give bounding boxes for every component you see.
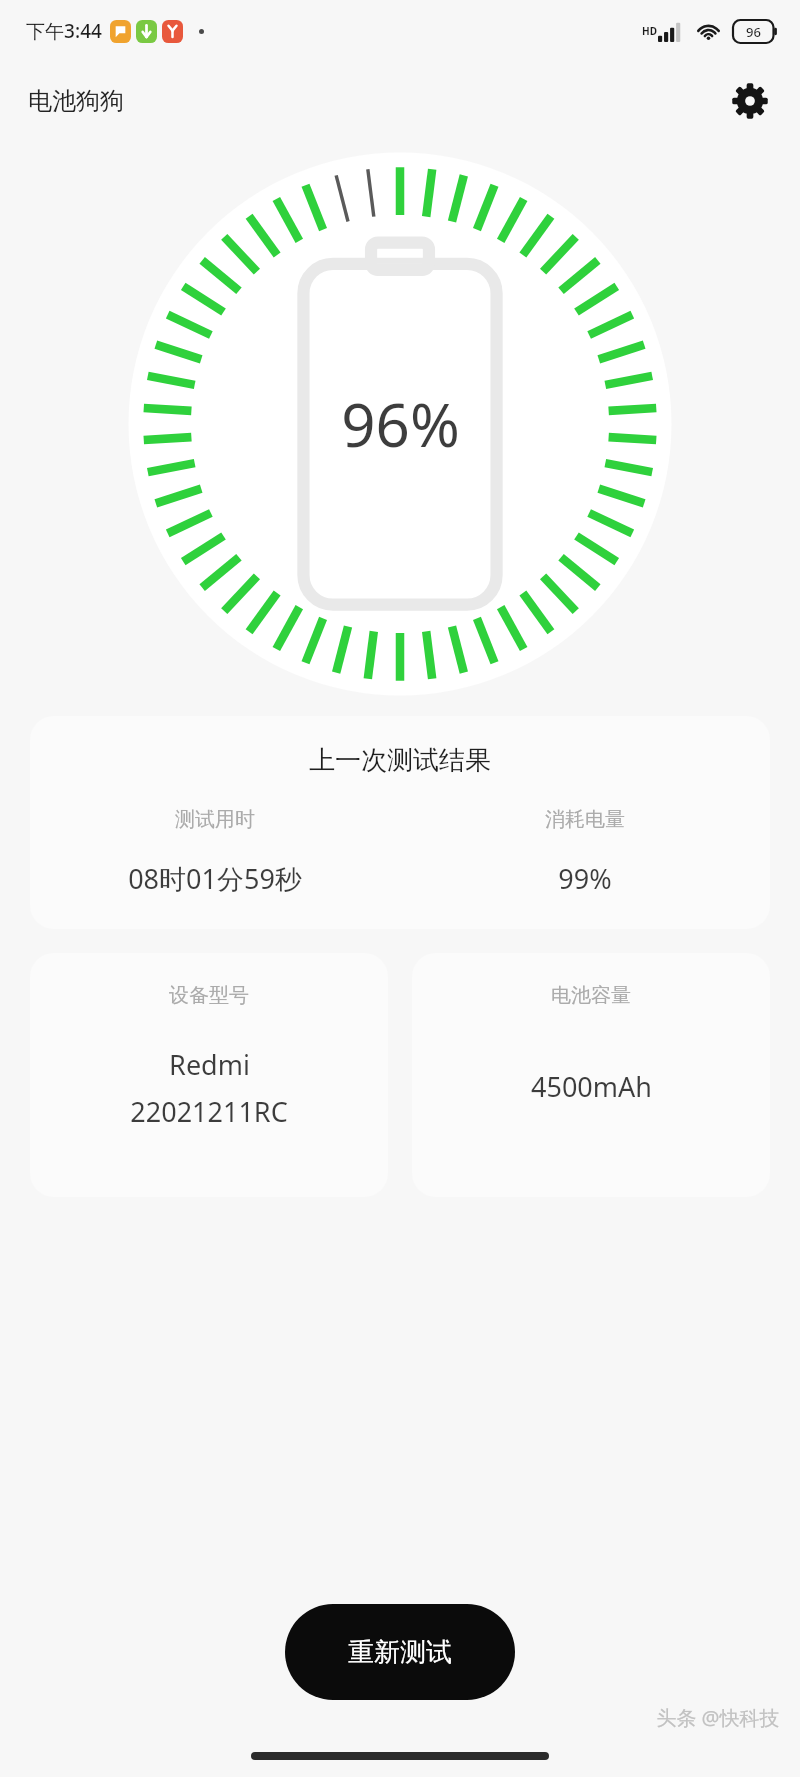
staticText: 99%: [558, 860, 612, 897]
staticText: Redmi: [169, 1046, 250, 1083]
staticText: 电池容量: [551, 983, 631, 1008]
staticText: 96%: [341, 383, 460, 465]
staticText: 消耗电量: [545, 807, 625, 832]
staticText: 上一次测试结果: [309, 744, 491, 777]
staticText: 设备型号: [169, 983, 249, 1008]
button[interactable]: 上一次测试结果: [30, 716, 770, 929]
staticText: 头条 @快科技: [656, 1704, 780, 1731]
staticText: 22021211RC: [130, 1093, 288, 1130]
button[interactable]: 电池容量: [412, 953, 770, 1197]
staticText: 重新测试: [348, 1636, 452, 1669]
button[interactable]: 电池狗狗: [28, 86, 124, 116]
staticText: 下午3:44: [26, 18, 102, 44]
staticText: 测试用时: [175, 807, 255, 832]
staticText: 电池狗狗: [28, 86, 124, 116]
staticText: 4500mAh: [531, 1068, 652, 1105]
staticText: 96: [746, 23, 761, 41]
button[interactable]: 重新测试: [285, 1604, 515, 1700]
button[interactable]: 设备型号: [30, 953, 388, 1197]
staticText: HD: [642, 24, 657, 38]
button[interactable]: Settings: [722, 73, 778, 129]
staticText: 08时01分59秒: [128, 860, 302, 897]
